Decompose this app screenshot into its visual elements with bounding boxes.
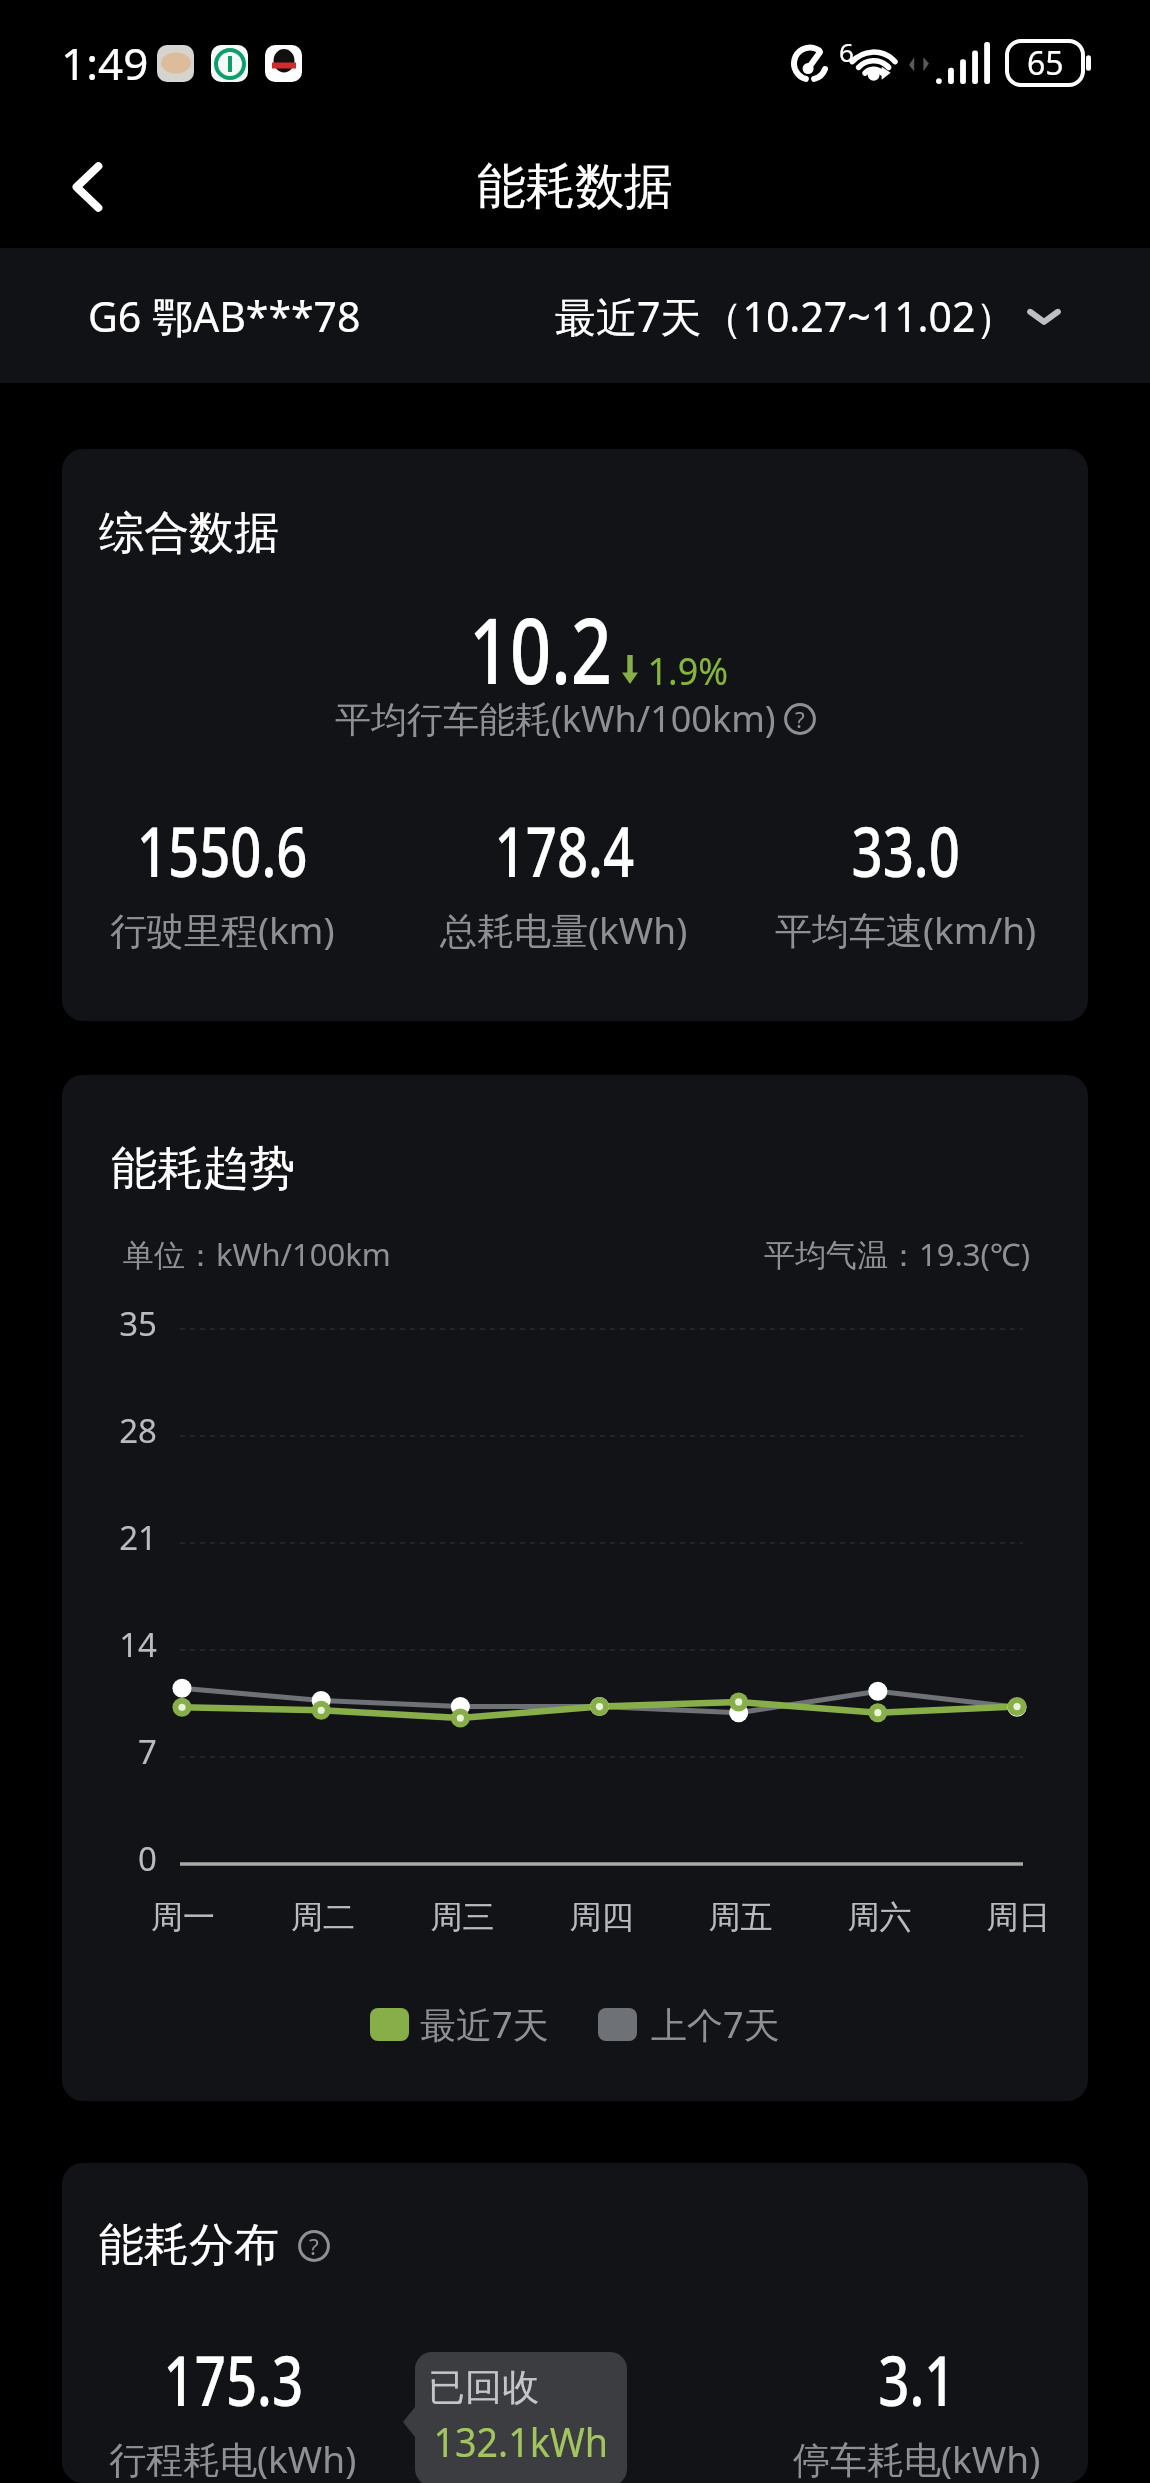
- staticText: 周一: [113, 1897, 253, 1937]
- staticText: 周日: [949, 1897, 1088, 1937]
- staticText: 已回收: [428, 2364, 539, 2411]
- staticText: 总耗电量(kWh): [440, 904, 688, 955]
- staticText: 周三: [393, 1897, 532, 1937]
- staticText: 平均气温：19.3(℃): [764, 1233, 1030, 1275]
- staticText: 周四: [532, 1897, 671, 1937]
- staticText: 1.9%: [647, 643, 728, 696]
- staticText: 33.0: [851, 803, 960, 897]
- staticText: 178.4: [495, 803, 634, 897]
- staticText: 35: [62, 1301, 157, 1346]
- staticText: 1550.6: [137, 803, 308, 897]
- staticText: 行驶里程(km): [110, 904, 335, 955]
- staticText: 0: [62, 1836, 157, 1881]
- staticText: 3.1: [878, 2332, 956, 2426]
- staticText: 10.2: [469, 588, 612, 711]
- staticText: 65: [1027, 41, 1064, 85]
- staticText: 7: [62, 1729, 157, 1774]
- button[interactable]: 最近7天（10.27~11.02）: [539, 272, 1150, 360]
- staticText: 平均行车能耗(kWh/100km): [335, 694, 776, 743]
- button[interactable]: Back: [45, 144, 131, 230]
- staticText: 上个7天: [651, 2000, 780, 2049]
- staticText: 能耗趋势: [111, 1140, 295, 1198]
- staticText: 能耗分布: [99, 2217, 279, 2274]
- staticText: 最近7天（10.27~11.02）: [555, 288, 1017, 344]
- staticText: 平均车速(km/h): [775, 904, 1037, 955]
- staticText: 175.3: [164, 2332, 303, 2426]
- staticText: ?: [309, 2231, 319, 2262]
- staticText: 最近7天: [420, 2000, 549, 2049]
- staticText: 21: [62, 1515, 157, 1560]
- staticText: 停车耗电(kWh): [793, 2433, 1041, 2483]
- staticText: G6 鄂AB***78: [88, 288, 361, 344]
- staticText: 综合数据: [99, 505, 279, 562]
- staticText: 能耗数据: [477, 156, 673, 218]
- staticText: 周二: [253, 1897, 393, 1937]
- staticText: 周六: [810, 1897, 949, 1937]
- staticText: 周五: [671, 1897, 810, 1937]
- staticText: 28: [62, 1408, 157, 1453]
- staticText: 行程耗电(kWh): [109, 2433, 357, 2483]
- button[interactable]: G6 鄂AB***78: [0, 268, 371, 364]
- staticText: 单位：kWh/100km: [123, 1233, 391, 1275]
- staticText: 6: [839, 34, 854, 69]
- staticText: 132.1kWh: [434, 2414, 608, 2468]
- staticText: 14: [62, 1622, 157, 1667]
- staticText: 1:49: [61, 33, 149, 93]
- staticText: ?: [795, 704, 805, 735]
